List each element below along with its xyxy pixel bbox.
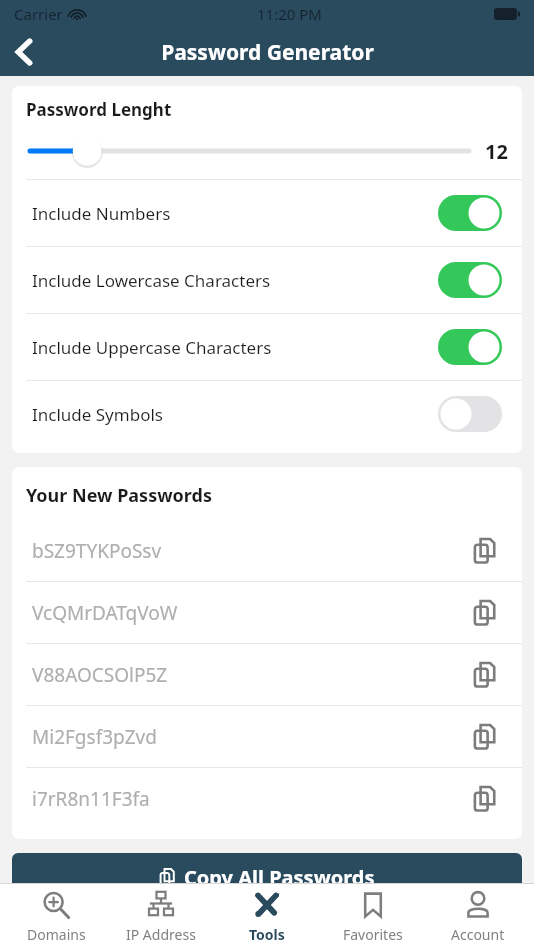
button[interactable]: Copy password: [468, 534, 502, 568]
button[interactable]: Copy All Passwords: [12, 853, 522, 901]
button[interactable]: Account: [428, 884, 528, 950]
button[interactable]: VcQMrDATqVoW: [12, 582, 522, 643]
button[interactable]: Domains: [6, 884, 106, 950]
button[interactable]: Include Numbers: [12, 180, 522, 246]
button[interactable]: Tools: [217, 884, 317, 950]
staticText: IP Address: [126, 925, 196, 944]
button[interactable]: Include Symbols: [12, 381, 522, 447]
button[interactable]: V88AOCSOlP5Z: [12, 644, 522, 705]
staticText: Include Symbols: [32, 403, 163, 426]
staticText: Include Uppercase Characters: [32, 336, 272, 359]
button[interactable]: Include Uppercase Characters: [12, 314, 522, 380]
staticText: Your New Passwords: [26, 483, 212, 508]
staticText: V88AOCSOlP5Z: [32, 662, 168, 688]
staticText: Favorites: [343, 925, 403, 944]
staticText: bSZ9TYKPoSsv: [32, 538, 162, 564]
staticText: Carrier: [14, 4, 63, 24]
button[interactable]: [26, 135, 473, 167]
staticText: Mi2Fgsf3pZvd: [32, 724, 157, 750]
button[interactable]: Copy password: [468, 782, 502, 816]
staticText: Password Lenght: [26, 98, 172, 121]
staticText: Include Lowercase Characters: [32, 269, 271, 292]
button[interactable]: bSZ9TYKPoSsv: [12, 520, 522, 581]
button[interactable]: Copy password: [468, 596, 502, 630]
button[interactable]: Copy password: [468, 658, 502, 692]
button[interactable]: Back: [0, 28, 48, 76]
button[interactable]: Include Lowercase Characters: [12, 247, 522, 313]
button[interactable]: i7rR8n11F3fa: [12, 768, 522, 829]
button[interactable]: Mi2Fgsf3pZvd: [12, 706, 522, 767]
staticText: i7rR8n11F3fa: [32, 786, 150, 812]
staticText: Include Numbers: [32, 202, 171, 225]
button[interactable]: Copy password: [468, 720, 502, 754]
staticText: 12: [485, 138, 508, 165]
staticText: Copy All Passwords: [184, 864, 375, 891]
staticText: 11:20 PM: [257, 4, 322, 24]
staticText: VcQMrDATqVoW: [32, 600, 178, 626]
staticText: Account: [451, 925, 505, 944]
button[interactable]: IP Address: [111, 884, 211, 950]
button[interactable]: Favorites: [323, 884, 423, 950]
staticText: Tools: [249, 925, 285, 944]
staticText: Password Generator: [161, 38, 374, 67]
staticText: Domains: [27, 925, 86, 944]
